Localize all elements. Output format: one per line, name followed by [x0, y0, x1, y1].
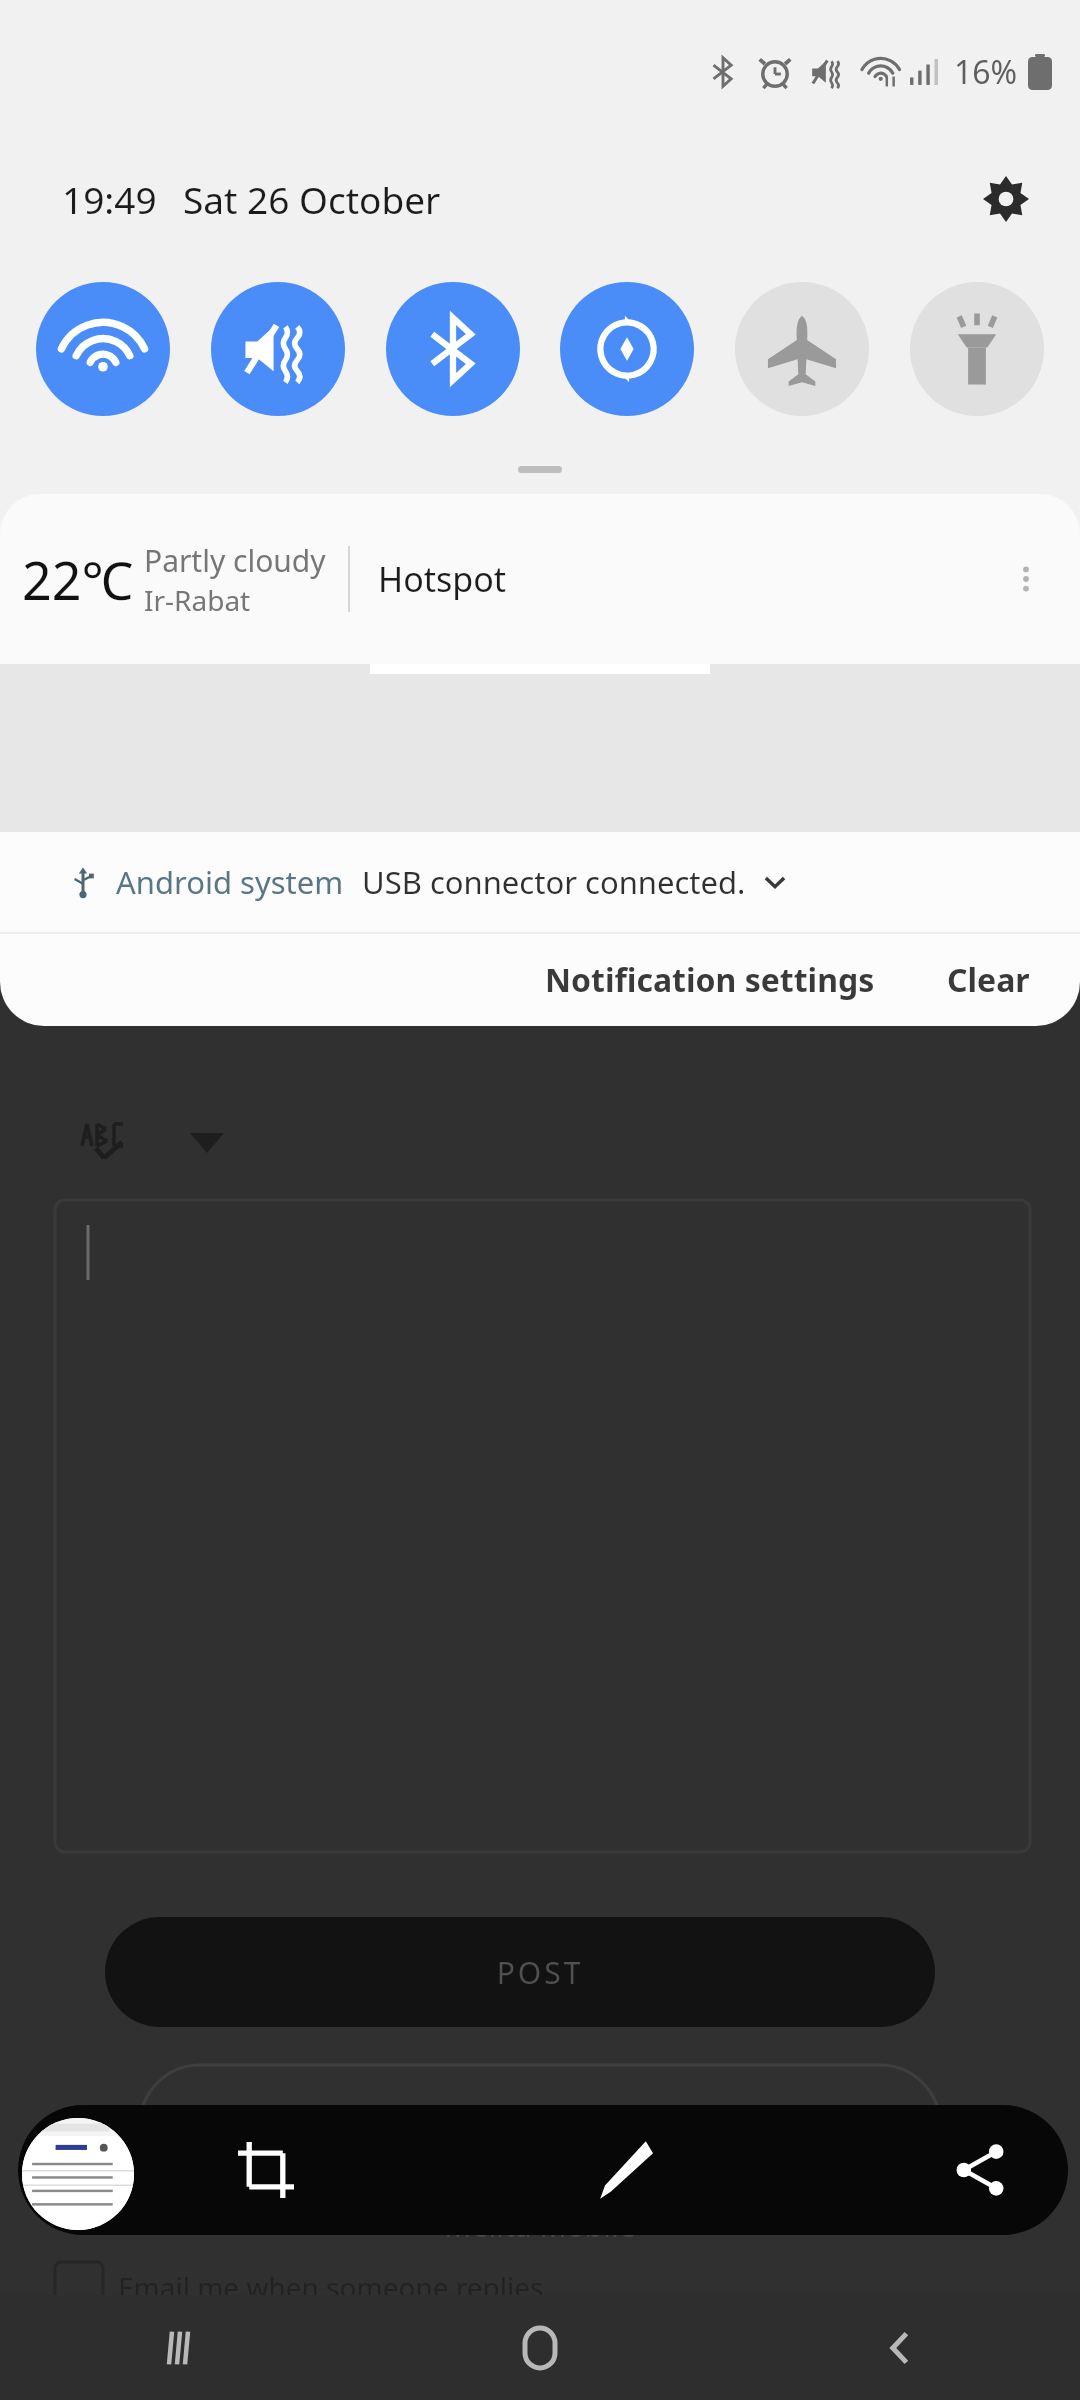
staticText: 22℃ — [22, 544, 134, 615]
button[interactable]: Clear — [923, 942, 1054, 1018]
staticText: Partly cloudy — [144, 540, 326, 581]
staticText: Ir-Rabat — [144, 581, 251, 619]
button[interactable]: Screenshot preview — [22, 2118, 134, 2230]
button[interactable]: Share — [932, 2122, 1028, 2218]
staticText: CANCEL — [0, 2100, 1080, 2141]
staticText: Android system — [116, 861, 344, 903]
button[interactable]: Bluetooth — [386, 282, 520, 416]
button[interactable]: Flight mode — [735, 282, 869, 416]
button[interactable]: Settings — [976, 169, 1036, 229]
staticText: Hotspot — [378, 556, 998, 602]
staticText: POST — [0, 1952, 1080, 1993]
staticText: 16% — [954, 50, 1018, 94]
staticText: Notification settings — [545, 958, 875, 1002]
staticText: Melita Mobile — [0, 2205, 1080, 2246]
button[interactable]: Notification settings — [521, 942, 899, 1018]
button[interactable]: 22℃ — [0, 494, 1080, 664]
button[interactable]: Recents — [120, 2295, 240, 2400]
staticText: USB connector connected. — [362, 861, 746, 903]
staticText: Sat 26 October — [183, 174, 441, 224]
button[interactable]: Draw — [575, 2122, 671, 2218]
button[interactable]: Mute — [211, 282, 345, 416]
button[interactable]: Back — [840, 2295, 960, 2400]
button[interactable]: Android system — [0, 832, 1080, 932]
button[interactable]: Home — [480, 2295, 600, 2400]
button[interactable]: Flashlight — [910, 282, 1044, 416]
staticText: 19:49 — [62, 174, 157, 224]
staticText: Clear — [947, 958, 1030, 1002]
button[interactable]: Crop — [218, 2122, 314, 2218]
button[interactable]: Auto rotate — [560, 282, 694, 416]
button[interactable]: More options — [998, 551, 1054, 607]
button[interactable]: Wi-Fi — [36, 282, 170, 416]
